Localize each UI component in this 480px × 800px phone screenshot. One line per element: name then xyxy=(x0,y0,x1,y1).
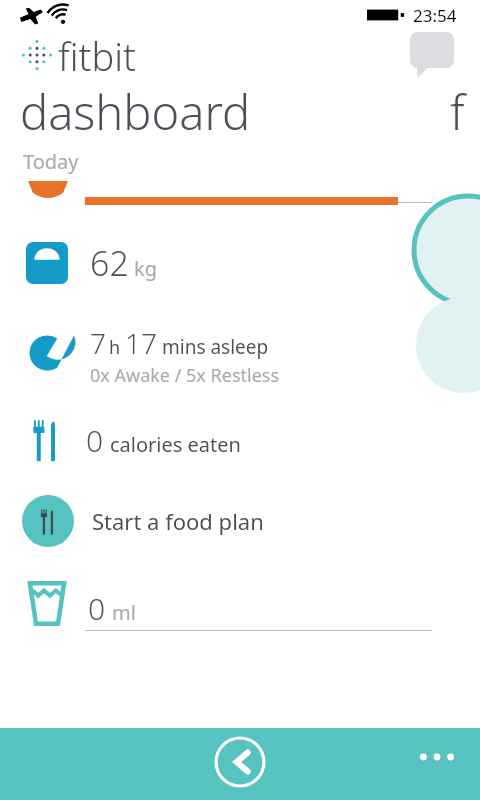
button[interactable]: More options xyxy=(408,740,466,774)
button[interactable]: Messages xyxy=(410,32,454,78)
staticText: calories eaten xyxy=(110,431,241,458)
staticText: ml xyxy=(112,599,136,626)
staticText: 0 xyxy=(88,588,106,629)
staticText: dashboard xyxy=(20,80,251,144)
staticText: Start a food plan xyxy=(92,506,264,536)
button[interactable] xyxy=(0,188,480,214)
staticText: 0 xyxy=(86,420,104,461)
staticText: 7 xyxy=(90,324,106,362)
staticText: kg xyxy=(134,255,157,282)
staticText: 62 xyxy=(90,240,129,286)
button[interactable]: 7 xyxy=(0,324,480,382)
staticText: h xyxy=(109,335,121,360)
staticText: 0x Awake / 5x Restless xyxy=(90,363,280,382)
staticText: 17 xyxy=(125,324,157,362)
staticText: fr xyxy=(450,80,480,144)
staticText: 23:54 xyxy=(413,4,457,27)
button[interactable]: 0 xyxy=(0,572,480,646)
staticText: mins asleep xyxy=(162,334,269,360)
button[interactable]: 0 xyxy=(0,412,480,468)
staticText: fitbit xyxy=(58,30,136,80)
staticText: Today xyxy=(23,148,79,175)
button[interactable]: 62 xyxy=(0,236,480,290)
button[interactable]: Back xyxy=(214,736,266,788)
button[interactable]: Start a food plan xyxy=(0,494,480,548)
